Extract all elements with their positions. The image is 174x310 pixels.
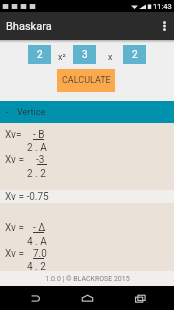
staticText: 4 . A [27,236,47,248]
staticText: 2 [132,49,138,61]
staticText: Xv = -0.75 [5,191,49,203]
staticText: Xv = [5,222,24,234]
button[interactable]: 2 [28,45,51,64]
button[interactable]: 3 [73,45,96,64]
button[interactable]: More options [154,12,174,40]
staticText: 3 [82,49,88,61]
button[interactable]: - [0,101,174,123]
staticText: 2 . 2 [27,168,46,180]
staticText: Bhaskara [6,20,52,33]
staticText: Vertice [17,107,46,118]
staticText: x² [58,52,66,63]
staticText: - [6,107,9,118]
staticText: 2 [37,49,43,61]
staticText: Xv= [5,129,22,141]
staticText: -3 [36,154,45,166]
staticText: - B [33,129,45,141]
staticText: CALCULATE [62,75,111,86]
button[interactable]: CALCULATE [57,69,115,92]
button[interactable]: 2 [123,45,146,64]
staticText: x [108,52,113,63]
button[interactable]: Home [69,286,105,310]
staticText: Xv = [5,248,24,260]
staticText: 4 . 2 [27,261,46,273]
staticText: 7.0 [33,248,47,260]
staticText: 11:43 [153,2,172,11]
button[interactable]: Back [17,286,53,310]
staticText: 2 . A [27,142,47,154]
button[interactable]: Recents [122,286,158,310]
staticText: 1.0.0 | © BLACKROSE 2015 [45,275,130,283]
staticText: Xv = [5,154,24,166]
staticText: - Δ [33,222,46,234]
